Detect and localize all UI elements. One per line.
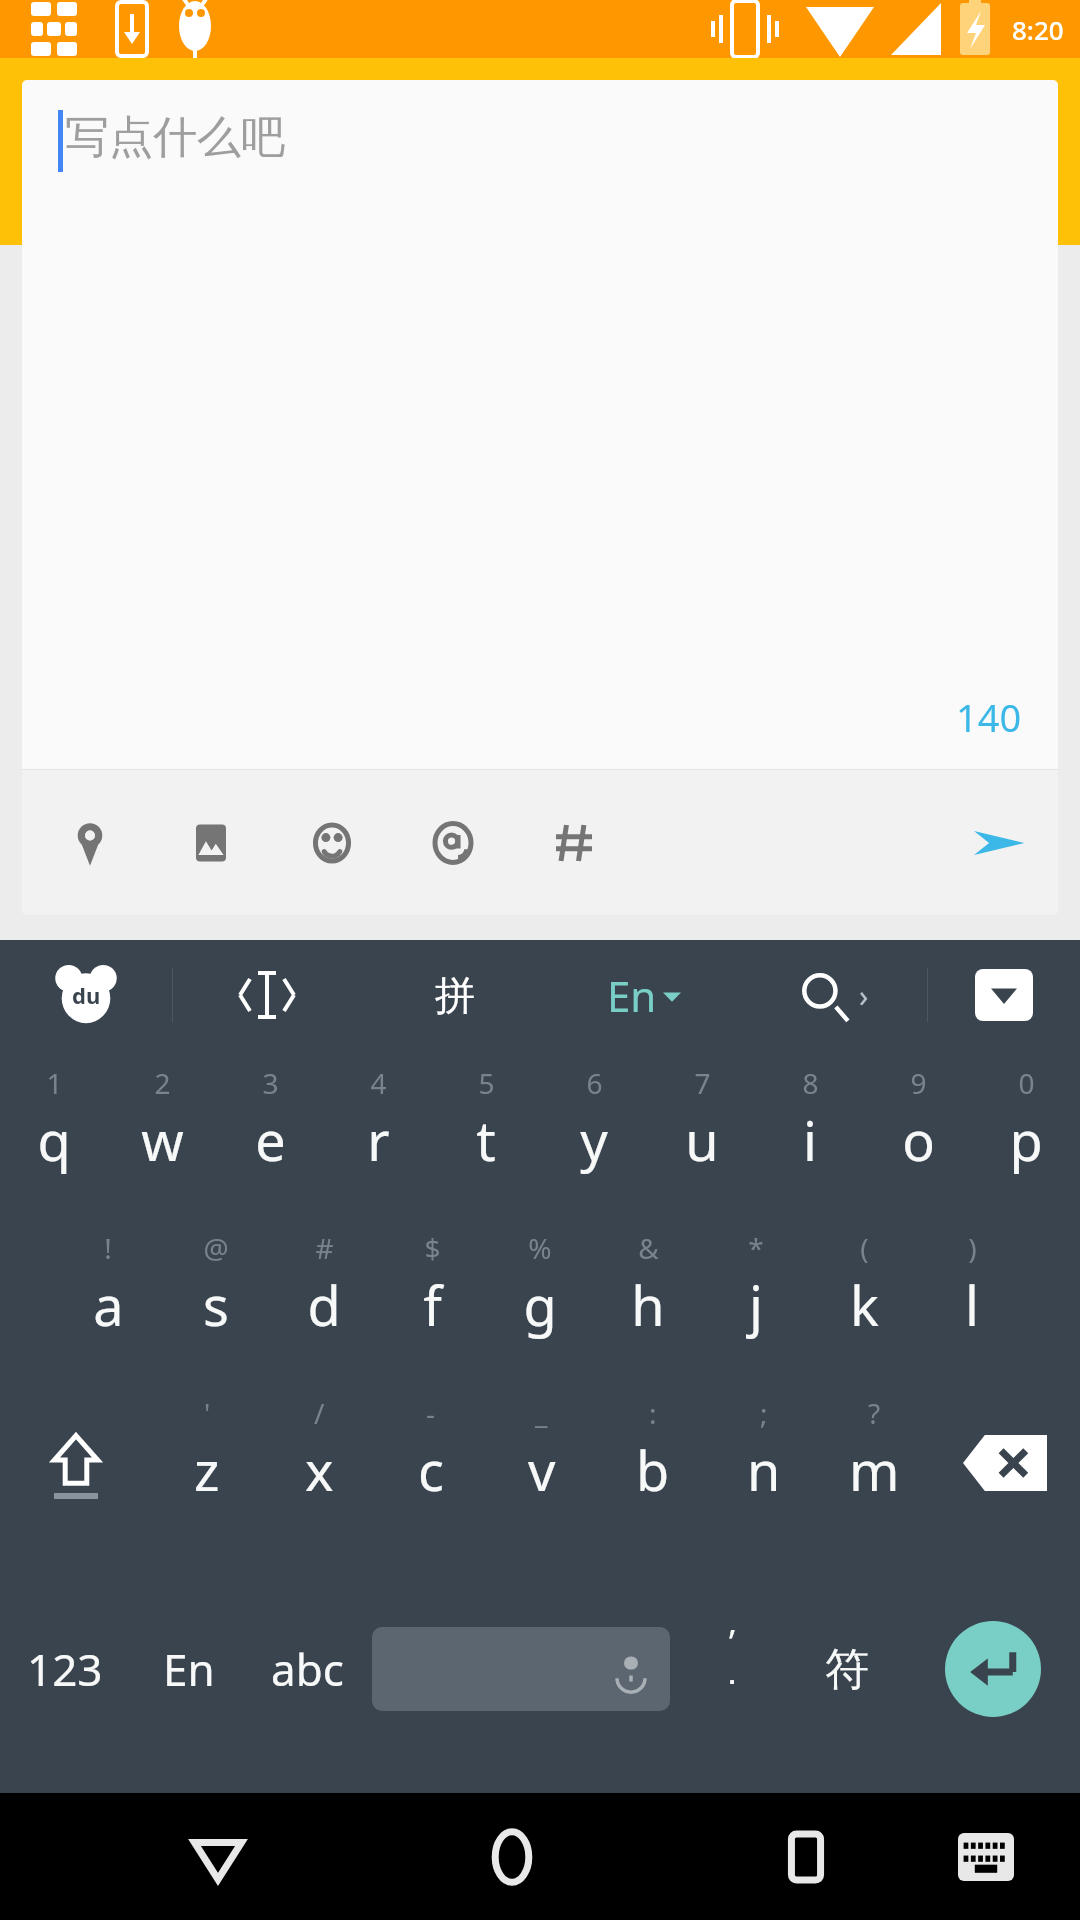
staticText: j [749, 1268, 763, 1342]
button[interactable]: _ [486, 1380, 597, 1545]
button[interactable]: 123 [0, 1545, 130, 1793]
staticText: g [523, 1268, 557, 1342]
staticText: 3 [262, 1064, 279, 1102]
staticText: e [255, 1103, 286, 1177]
staticText: @ [203, 1229, 229, 1267]
staticText: q [37, 1103, 71, 1177]
button[interactable]: Add image [181, 813, 241, 873]
button[interactable]: ? [819, 1380, 930, 1545]
button[interactable]: Topic [544, 813, 604, 873]
button[interactable]: Mention [423, 813, 483, 873]
button[interactable]: abc [248, 1545, 366, 1793]
staticText: 符 [825, 1642, 869, 1697]
button[interactable]: Move cursor [173, 940, 361, 1050]
staticText: i [803, 1103, 817, 1177]
staticText: y [580, 1103, 608, 1177]
button[interactable]: Location [60, 813, 120, 873]
button[interactable]: 拼 [361, 940, 549, 1050]
staticText: & [638, 1229, 659, 1267]
staticText: * [748, 1229, 764, 1267]
staticText: ' [204, 1394, 211, 1432]
staticText: 8 [802, 1064, 819, 1102]
button[interactable]: Recents [761, 1812, 851, 1902]
button[interactable]: $ [378, 1215, 486, 1380]
staticText: m [849, 1433, 900, 1507]
button[interactable]: En [549, 940, 738, 1050]
staticText: 0 [1018, 1064, 1035, 1102]
staticText: : [649, 1394, 657, 1432]
button[interactable]: Hide keyboard [928, 940, 1080, 1050]
staticText: d [307, 1268, 341, 1342]
staticText: ’ [729, 1619, 735, 1665]
staticText: 1 [46, 1064, 63, 1102]
button[interactable]: ) [918, 1215, 1026, 1380]
button[interactable]: Send [968, 813, 1028, 873]
button[interactable]: Backspace [930, 1380, 1080, 1545]
staticText: v [528, 1433, 556, 1507]
staticText: h [631, 1268, 665, 1342]
button[interactable]: Search [738, 940, 927, 1050]
button[interactable]: 7 [648, 1050, 756, 1215]
staticText: 4 [370, 1064, 387, 1102]
button[interactable]: 8 [756, 1050, 864, 1215]
staticText: 9 [910, 1064, 927, 1102]
staticText: p [1009, 1103, 1043, 1177]
button[interactable]: 3 [216, 1050, 324, 1215]
button[interactable]: - [375, 1380, 486, 1545]
button[interactable]: @ [162, 1215, 270, 1380]
button[interactable]: Back [173, 1812, 263, 1902]
staticText: ( [860, 1229, 869, 1267]
staticText: l [965, 1268, 979, 1342]
button[interactable]: Space [372, 1627, 670, 1711]
button[interactable]: 9 [864, 1050, 972, 1215]
button[interactable]: ' [151, 1380, 263, 1545]
staticText: 写点什么吧 [65, 110, 285, 165]
staticText: a [93, 1268, 124, 1342]
button[interactable]: ; [708, 1380, 819, 1545]
button[interactable]: 2 [108, 1050, 216, 1215]
button[interactable]: & [594, 1215, 702, 1380]
button[interactable]: 5 [432, 1050, 540, 1215]
staticText: z [194, 1433, 220, 1507]
staticText: / [314, 1394, 325, 1432]
staticText: n [747, 1433, 781, 1507]
staticText: En [163, 1639, 215, 1699]
button[interactable]: 符 [788, 1545, 906, 1793]
button[interactable]: En [130, 1545, 248, 1793]
staticText: b [636, 1433, 670, 1507]
button[interactable]: Home [467, 1812, 557, 1902]
button[interactable]: ( [810, 1215, 918, 1380]
staticText: s [203, 1268, 229, 1342]
button[interactable]: Switch keyboard [943, 1814, 1029, 1900]
staticText: _ [535, 1394, 548, 1432]
button[interactable]: : [597, 1380, 708, 1545]
button[interactable]: / [263, 1380, 375, 1545]
staticText: › [859, 975, 869, 1016]
button[interactable]: Shift [0, 1380, 151, 1545]
button[interactable]: 0 [972, 1050, 1080, 1215]
button[interactable]: 1 [0, 1050, 108, 1215]
staticText: du [72, 980, 101, 1010]
staticText: ! [104, 1229, 112, 1267]
staticText: 123 [27, 1639, 103, 1699]
staticText: r [367, 1103, 390, 1177]
staticText: 5 [478, 1064, 495, 1102]
staticText: 拼 [435, 970, 475, 1020]
button[interactable]: 4 [324, 1050, 432, 1215]
staticText: o [902, 1103, 935, 1177]
button[interactable]: ! [54, 1215, 162, 1380]
button[interactable]: % [486, 1215, 594, 1380]
button[interactable]: Emoji [302, 813, 362, 873]
staticText: - [426, 1394, 436, 1432]
button[interactable]: Baidu input [0, 940, 172, 1050]
staticText: abc [271, 1639, 344, 1699]
staticText: 140 [956, 691, 1022, 743]
staticText: En [607, 967, 657, 1024]
staticText: k [850, 1268, 879, 1342]
staticText: 8:20 [1012, 12, 1064, 47]
button[interactable]: * [702, 1215, 810, 1380]
button[interactable]: Enter [945, 1621, 1041, 1717]
button[interactable]: # [270, 1215, 378, 1380]
button[interactable]: ’ [676, 1545, 788, 1793]
button[interactable]: 6 [540, 1050, 648, 1215]
